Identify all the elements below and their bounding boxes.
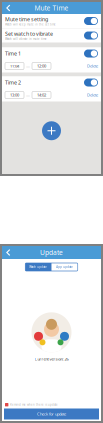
staticText: — [26, 92, 30, 98]
staticText: Delete [87, 63, 98, 69]
staticText: Watch will keep mute in the set time [5, 23, 56, 26]
staticText: Remind me when there is update [10, 403, 58, 406]
button[interactable]: Delete [87, 61, 98, 71]
staticText: 12:00 [37, 63, 46, 69]
staticText: Update [40, 248, 63, 257]
staticText: 11:04 [10, 63, 19, 69]
button[interactable]: Watch update [25, 263, 51, 271]
staticText: Current version: 26 [34, 356, 68, 362]
button[interactable]: Add mute time [42, 121, 61, 140]
button[interactable]: App update [52, 263, 78, 271]
staticText: Time 1 [5, 50, 21, 57]
staticText: Check for update [37, 411, 66, 417]
staticText: Mute time setting [5, 16, 48, 23]
staticText: — [26, 63, 30, 69]
button[interactable]: Mute time setting [2, 14, 101, 28]
button[interactable]: Remind me when there is update [5, 403, 8, 406]
staticText: 14:02 [37, 92, 46, 98]
button[interactable]: Back [2, 2, 15, 14]
button[interactable]: Back [2, 246, 15, 259]
button[interactable]: Delete [87, 90, 98, 100]
button[interactable]: Set watch to vibrate [2, 28, 101, 42]
staticText: Watch will vibrate in mute time [5, 37, 47, 41]
staticText: Set watch to vibrate [5, 30, 53, 37]
staticText: Time 2 [5, 79, 21, 86]
staticText: Watch update [29, 265, 47, 269]
staticText: Mute Time [34, 4, 68, 12]
button[interactable]: Check for update [4, 408, 99, 419]
staticText: Delete [87, 92, 98, 98]
staticText: App update [56, 265, 73, 269]
staticText: 13:00 [10, 92, 19, 98]
